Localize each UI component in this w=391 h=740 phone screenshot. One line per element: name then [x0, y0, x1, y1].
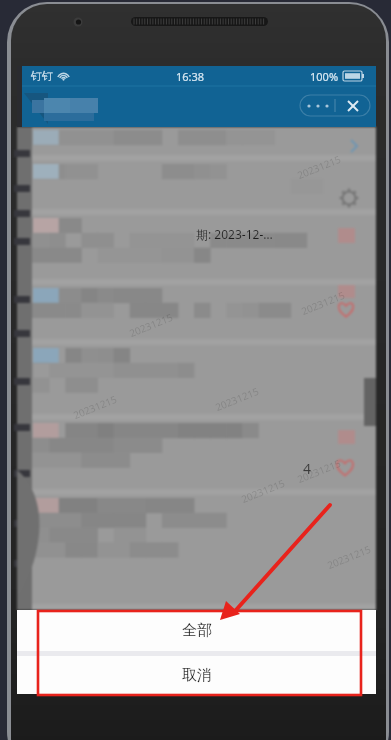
staticText: 钉钉	[31, 69, 53, 83]
staticText: 20231215	[325, 542, 373, 572]
button[interactable]: Close	[335, 95, 370, 116]
staticText: 取消	[182, 666, 212, 685]
staticText: 4	[303, 459, 312, 478]
staticText: 100%	[310, 69, 339, 84]
staticText: 20231215	[239, 476, 287, 506]
staticText: 16:38	[176, 69, 205, 84]
button[interactable]: More options	[300, 95, 335, 116]
button[interactable]: 全部	[17, 610, 376, 651]
staticText: 期: 2023-12-…	[196, 226, 273, 242]
staticText: 全部	[182, 621, 212, 640]
staticText: 20231215	[213, 384, 261, 414]
staticText: 20231215	[127, 310, 175, 340]
staticText: 20231215	[295, 152, 343, 182]
staticText: 20231215	[299, 288, 347, 318]
staticText: 20231215	[295, 456, 343, 486]
button[interactable]: 取消	[17, 656, 376, 694]
staticText: 20231215	[71, 392, 119, 422]
